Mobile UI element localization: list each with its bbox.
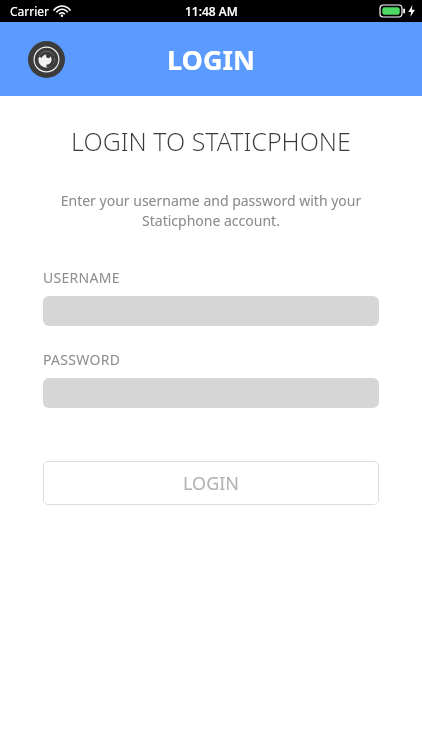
staticText: Carrier xyxy=(10,3,50,19)
staticText: LOGIN xyxy=(183,471,240,496)
staticText: LOGIN xyxy=(167,41,255,78)
staticText: USERNAME xyxy=(43,268,120,287)
button[interactable]: Staticphone logo xyxy=(28,41,65,78)
staticText: PASSWORD xyxy=(43,350,121,369)
button[interactable]: LOGIN xyxy=(43,461,379,505)
staticText: Enter your username and password with yo… xyxy=(32,191,390,230)
staticText: 11:48 AM xyxy=(185,3,238,19)
staticText: LOGIN TO STATICPHONE xyxy=(20,124,402,158)
